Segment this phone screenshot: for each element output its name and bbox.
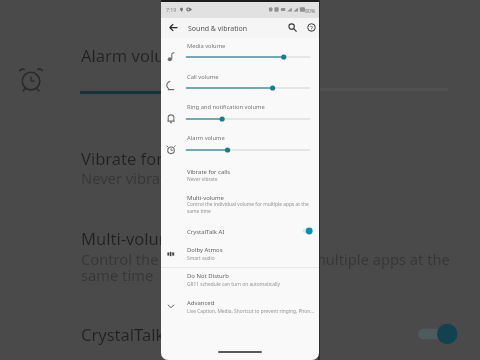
- staticText: Dolby Atmos: [187, 246, 223, 254]
- button[interactable]: [161, 37, 319, 66]
- staticText: Alarm volume: [187, 134, 225, 142]
- button[interactable]: Search: [284, 19, 300, 35]
- staticText: Control the individual volume for multip…: [81, 249, 450, 269]
- staticText: Sound & vibration: [188, 24, 248, 34]
- staticText: Alarm volume: [81, 44, 190, 66]
- button[interactable]: [161, 98, 319, 127]
- staticText: Advanced: [187, 299, 215, 307]
- button[interactable]: [161, 129, 319, 158]
- staticText: 7:19: [166, 6, 177, 13]
- button[interactable]: Help: [303, 19, 319, 35]
- button[interactable]: [161, 222, 319, 240]
- staticText: 80%: [305, 7, 316, 14]
- button[interactable]: [161, 165, 319, 182]
- staticText: Multi-volume: [81, 227, 184, 249]
- staticText: Call volume: [187, 73, 219, 81]
- staticText: Smart audio: [187, 255, 215, 262]
- staticText: Do Not Disturb: [187, 272, 229, 280]
- staticText: Live Caption, Media, Shortcut to prevent…: [187, 308, 315, 315]
- button[interactable]: Back: [165, 19, 181, 35]
- staticText: CrystalTalk AI: [187, 228, 225, 236]
- staticText: Ring and notification volume: [187, 103, 265, 111]
- staticText: Vibrate for calls: [81, 147, 201, 169]
- staticText: same time: [187, 208, 211, 215]
- staticText: Media volume: [187, 42, 226, 50]
- staticText: same time: [81, 265, 154, 285]
- staticText: GR11 schedule can turn on automatically: [187, 281, 281, 288]
- staticText: Vibrate for calls: [187, 168, 231, 176]
- button[interactable]: [161, 270, 319, 289]
- button[interactable]: [161, 190, 319, 215]
- button[interactable]: [161, 68, 319, 97]
- staticText: Never vibrate: [187, 176, 218, 183]
- staticText: CrystalTalk AI: [81, 323, 185, 345]
- staticText: Control the individual volume for multip…: [187, 201, 309, 208]
- staticText: Never vibrate: [81, 168, 174, 188]
- staticText: Multi-volume: [187, 194, 224, 202]
- button[interactable]: [161, 297, 319, 316]
- button[interactable]: [161, 243, 319, 262]
- staticText: ?: [310, 24, 313, 32]
